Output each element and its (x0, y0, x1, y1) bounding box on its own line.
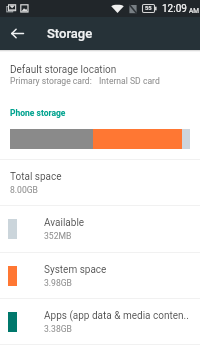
button[interactable]: Default storage location (0, 55, 200, 94)
staticText: Total space (10, 171, 62, 183)
staticText: 55 (145, 5, 152, 12)
staticText: Storage (47, 26, 93, 41)
staticText: Phone storage (10, 108, 66, 118)
staticText: Apps (app data & media conten.. (44, 310, 189, 322)
staticText: 3.38GB (44, 324, 72, 334)
staticText: 12:09 (162, 3, 187, 15)
button[interactable]: System space (0, 253, 200, 298)
staticText: Internal SD card (99, 76, 160, 86)
staticText: System space (44, 264, 107, 276)
staticText: 3.98GB (44, 278, 72, 288)
staticText: 352MB (44, 231, 72, 241)
staticText: Primary storage card: (10, 76, 92, 86)
staticText: Available (44, 217, 85, 229)
button[interactable]: Back (1, 17, 34, 50)
button[interactable]: Total space (0, 160, 200, 205)
staticText: Default storage location (10, 64, 117, 76)
staticText: AM (189, 7, 199, 15)
staticText: 8.00GB (10, 185, 38, 195)
button[interactable]: Available (0, 206, 200, 252)
button[interactable]: Apps (app data & media conten.. (0, 299, 200, 344)
